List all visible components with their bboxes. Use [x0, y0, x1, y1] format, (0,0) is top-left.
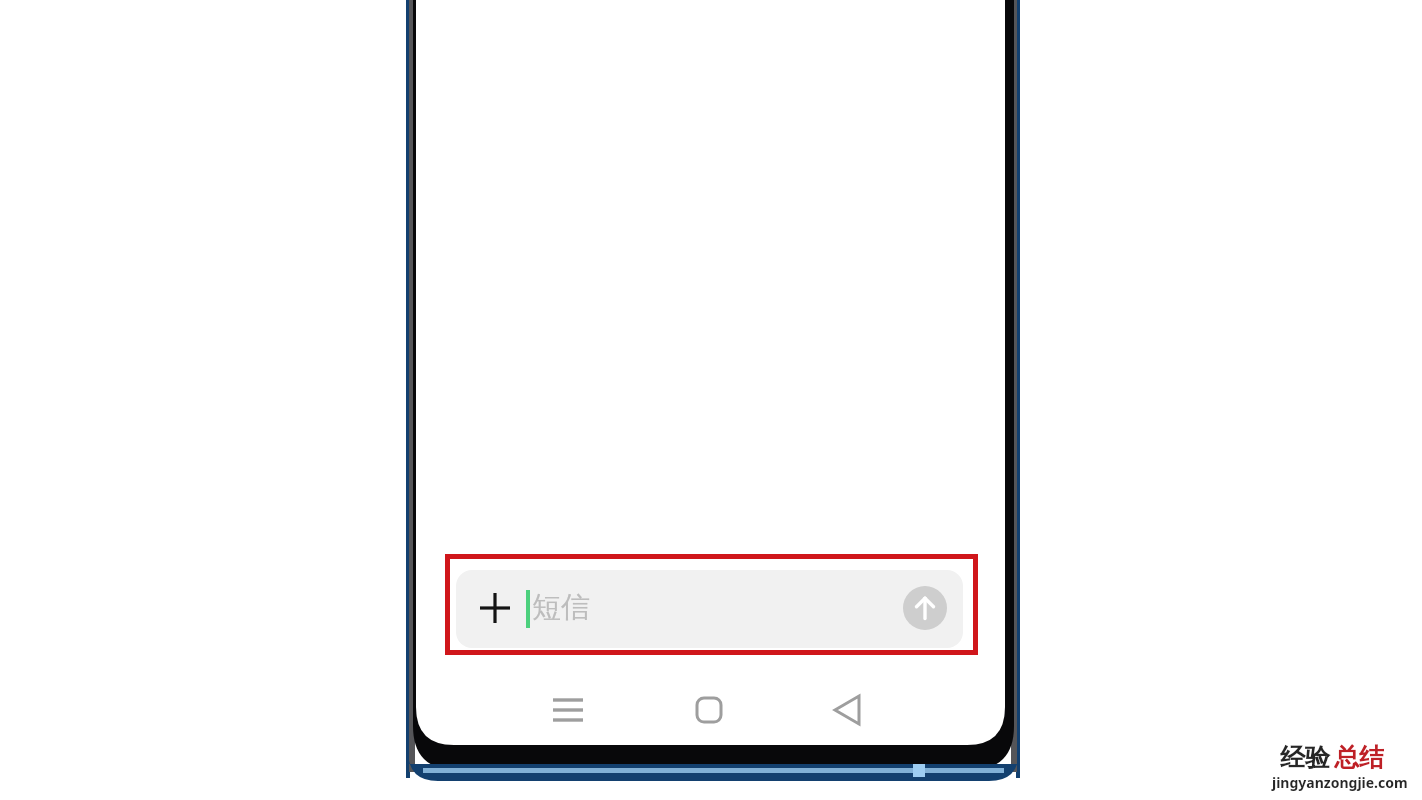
- staticText: jingyanzongjie.com: [1272, 773, 1408, 792]
- button[interactable]: Send: [903, 586, 947, 630]
- staticText: 总结: [1334, 742, 1384, 773]
- staticText: 经验: [1280, 742, 1330, 773]
- staticText: 短信: [532, 589, 590, 626]
- button[interactable]: Recent apps: [546, 688, 590, 732]
- button[interactable]: [456, 570, 963, 648]
- button[interactable]: Home: [687, 688, 731, 732]
- button[interactable]: Back: [827, 688, 871, 732]
- button[interactable]: Add attachment: [473, 586, 517, 630]
